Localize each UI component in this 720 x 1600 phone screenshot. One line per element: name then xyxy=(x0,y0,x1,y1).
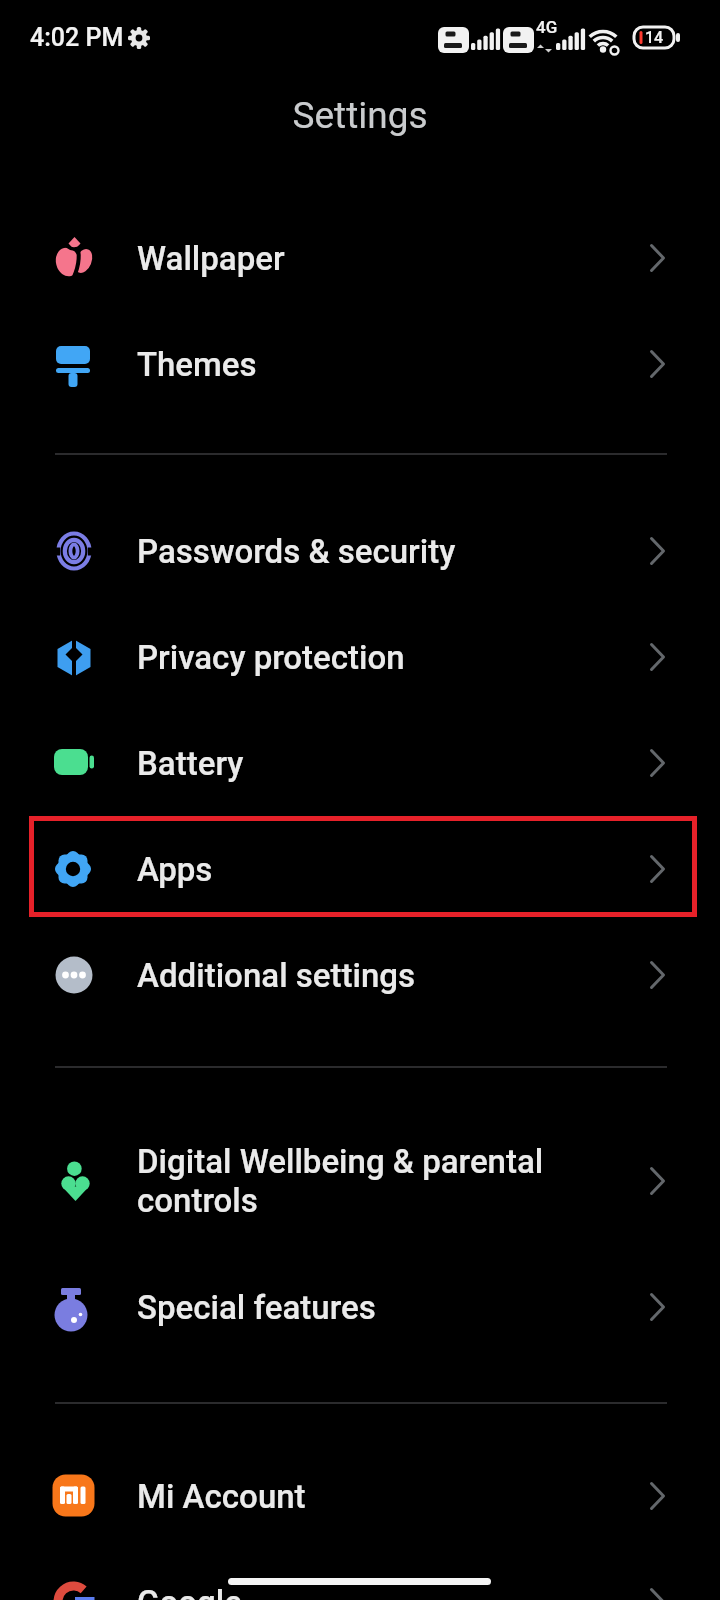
staticText: Settings xyxy=(0,94,720,137)
staticText: Themes xyxy=(137,345,257,384)
staticText: Special features xyxy=(137,1288,376,1327)
button[interactable]: Google xyxy=(0,1549,720,1600)
button[interactable]: Mi Account xyxy=(0,1443,720,1549)
staticText: Digital Wellbeing & parental xyxy=(137,1142,544,1181)
button[interactable]: Battery xyxy=(0,710,720,816)
staticText: Additional settings xyxy=(137,956,416,995)
staticText: Battery xyxy=(137,744,244,783)
staticText: Privacy protection xyxy=(137,638,405,677)
staticText: Mi Account xyxy=(137,1477,306,1516)
staticText: Google xyxy=(137,1583,242,1600)
button[interactable]: Wallpaper xyxy=(0,205,720,311)
staticText: controls xyxy=(137,1181,258,1220)
staticText: Passwords & security xyxy=(137,532,456,571)
staticText: 4:02 PM xyxy=(30,23,124,52)
staticText: 14 xyxy=(645,28,664,47)
button[interactable]: Digital Wellbeing & parental xyxy=(0,1110,720,1252)
button[interactable]: Special features xyxy=(0,1254,720,1360)
button[interactable]: Additional settings xyxy=(0,922,720,1028)
button[interactable]: Apps xyxy=(0,816,720,922)
staticText: Wallpaper xyxy=(137,239,285,278)
staticText: 4G xyxy=(536,17,558,37)
button[interactable]: Passwords & security xyxy=(0,498,720,604)
button[interactable]: Themes xyxy=(0,311,720,417)
staticText: Apps xyxy=(137,850,213,889)
button[interactable]: Privacy protection xyxy=(0,604,720,710)
